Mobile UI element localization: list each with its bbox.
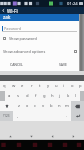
button[interactable]: o [68,81,76,91]
button[interactable]: Left [42,133,63,139]
button[interactable]: j [56,91,64,101]
button[interactable]: g [40,91,48,101]
button[interactable]: Shift [0,101,14,111]
staticText: i [63,83,65,89]
button[interactable]: l [72,91,80,101]
button[interactable]: u [52,81,60,91]
staticText: p [79,83,82,89]
staticText: 01:24 [67,1,78,7]
button[interactable]: m [63,101,71,111]
staticText: e [21,83,24,89]
staticText: w [12,83,16,89]
button[interactable]: h [48,91,56,101]
staticText: ?123 [3,114,10,118]
staticText: k [67,93,70,99]
button[interactable]: Show advanced options [0,48,79,54]
button[interactable]: , [13,111,22,121]
button[interactable]: z [14,101,23,111]
button[interactable]: r [27,81,36,91]
staticText: a [8,93,11,99]
staticText: Wi-Fi [7,8,18,14]
staticText: s [17,93,20,99]
staticText: h [51,93,54,99]
button[interactable]: n [55,101,63,111]
button[interactable]: Navigate up [0,7,7,14]
button[interactable]: e [18,81,27,91]
staticText: t [39,83,41,89]
button[interactable]: b [47,101,55,111]
button[interactable]: Up [0,133,21,139]
button[interactable]: q [0,81,9,91]
staticText: zak [3,14,11,20]
button[interactable]: ?123 [0,111,13,121]
staticText: d [26,93,29,99]
staticText: . [66,113,68,119]
staticText: CANCEL [10,62,23,67]
staticText: q [3,83,6,89]
staticText: x [26,103,29,109]
staticText: Show advanced options [3,49,46,54]
button[interactable]: Password [2,25,77,32]
staticText: v [42,103,45,109]
button[interactable]: s [14,91,23,101]
staticText: m [65,103,69,109]
button[interactable]: Backspace [71,101,84,111]
staticText: r [31,83,33,89]
staticText: SAVE [59,62,67,67]
button[interactable]: Enter [71,111,84,121]
staticText: g [43,93,46,99]
staticText: Password [4,26,22,31]
button[interactable]: CANCEL [10,60,23,68]
button[interactable]: SAVE [59,60,67,68]
button[interactable]: d [23,91,32,101]
button[interactable]: Show password [0,35,79,41]
staticText: j [59,93,61,99]
staticText: , [17,113,19,119]
button[interactable]: f [32,91,40,101]
staticText: l [75,93,77,99]
staticText: f [35,93,37,99]
button[interactable]: i [60,81,68,91]
staticText: Show password [9,36,37,41]
button[interactable]: Right [63,133,84,139]
button[interactable]: w [9,81,18,91]
button[interactable]: Down [21,133,42,139]
staticText: b [50,103,53,109]
button[interactable]: x [23,101,31,111]
staticText: o [71,83,74,89]
staticText: c [34,103,37,109]
staticText: z [18,103,20,109]
button[interactable]: y [44,81,52,91]
button[interactable]: k [64,91,72,101]
staticText: u [55,83,58,89]
button[interactable]: a [5,91,14,101]
staticText: y [47,83,50,89]
staticText: n [58,103,61,109]
button[interactable]: c [31,101,39,111]
button[interactable]: p [76,81,84,91]
button[interactable]: t [36,81,44,91]
button[interactable]: v [39,101,47,111]
